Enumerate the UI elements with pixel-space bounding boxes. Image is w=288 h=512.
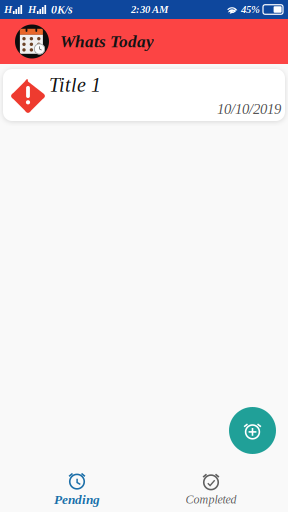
staticText: 45% <box>241 4 260 15</box>
staticText: Completed <box>185 493 236 506</box>
button[interactable]: Title 1 <box>3 69 285 121</box>
button[interactable]: Completed <box>144 465 278 511</box>
staticText: 0K/s <box>51 3 73 16</box>
staticText: Title 1 <box>49 74 101 96</box>
staticText: Whats Today <box>60 32 154 51</box>
staticText: H <box>4 4 12 15</box>
button[interactable]: Whats Today <box>0 24 60 58</box>
staticText: 10/10/2019 <box>217 101 281 117</box>
staticText: Pending <box>54 492 100 507</box>
staticText: H <box>28 4 36 15</box>
button[interactable]: Pending <box>10 465 144 511</box>
button[interactable]: Add reminder <box>229 407 276 454</box>
staticText: 2:30 AM <box>131 4 168 15</box>
